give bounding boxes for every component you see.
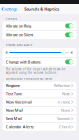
button[interactable]: Sent Mail [2,115,76,122]
staticText: New Mail [6,108,23,113]
button[interactable]: Vibrate on Silent [2,30,76,39]
staticText: Reflection [54,83,70,88]
staticText: Settings [4,6,17,12]
staticText: RINGER AND ALERTS [6,43,32,47]
staticText: Sent Mail [6,116,22,121]
staticText: VIBRATE [6,17,17,20]
staticText: SOUNDS AND VIBRATION PATTERNS [6,77,52,81]
staticText: New Voicemail [6,99,32,105]
staticText: Change with Buttons [6,59,41,64]
button[interactable]: Ringtone [2,82,76,89]
button[interactable]: New Mail [2,106,76,114]
staticText: The volume of the ringer and alerts can … [6,67,66,74]
button[interactable]: Vibrate on Ring [2,21,76,30]
button[interactable]: Settings [0,4,17,14]
button[interactable]: New Voicemail [2,98,76,106]
staticText: Tri-tone [57,99,70,105]
staticText: Vibrate on Ring [6,23,31,28]
button[interactable]: Calendar Alerts [2,123,76,131]
staticText: Calendar Alerts [6,124,34,129]
button[interactable]: Change with Buttons [2,58,76,66]
staticText: Swoosh [57,116,70,121]
staticText: Note [62,91,70,96]
button[interactable]: Text Tone [2,90,76,98]
staticText: Vibrate on Silent [6,32,33,37]
staticText: None [61,108,70,113]
staticText: Chord [59,124,70,129]
staticText: Sounds & Haptics [24,6,59,12]
staticText: Ringtone [6,83,20,88]
staticText: Text Tone [6,91,22,96]
